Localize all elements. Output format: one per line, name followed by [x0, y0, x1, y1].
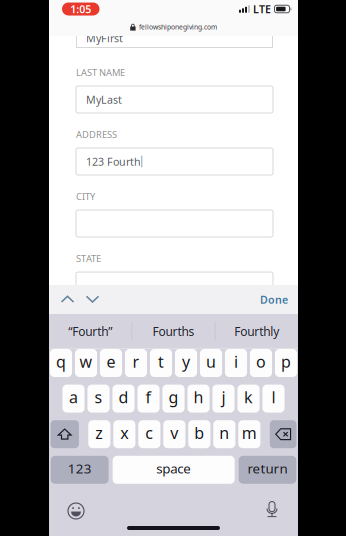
staticText: e — [106, 351, 115, 372]
button[interactable]: Done — [260, 285, 288, 314]
staticText: 1:05 — [70, 2, 91, 16]
staticText: ADDRESS — [76, 128, 117, 141]
button[interactable]: u — [200, 349, 222, 377]
staticText: u — [206, 351, 216, 372]
staticText: v — [170, 422, 178, 443]
button[interactable]: Emoji keyboard — [61, 502, 91, 520]
staticText: n — [219, 422, 229, 443]
button[interactable]: 123 — [51, 456, 109, 484]
button[interactable]: p — [275, 349, 297, 377]
staticText: o — [256, 351, 266, 372]
staticText: l — [271, 386, 275, 408]
button[interactable]: q — [50, 349, 72, 377]
staticText: t — [158, 351, 164, 372]
staticText: s — [94, 386, 102, 408]
button[interactable]: r — [125, 349, 147, 377]
staticText: d — [118, 386, 128, 408]
staticText: LAST NAME — [76, 66, 125, 79]
button[interactable]: z — [88, 420, 110, 448]
button[interactable]: o — [250, 349, 272, 377]
staticText: g — [168, 386, 178, 408]
staticText: y — [182, 351, 190, 372]
button[interactable]: t — [150, 349, 172, 377]
button[interactable]: n — [213, 420, 235, 448]
staticText: i — [234, 351, 238, 372]
button[interactable]: v — [163, 420, 185, 448]
button[interactable]: l — [262, 385, 285, 413]
staticText: “Fourth” — [68, 323, 112, 339]
button[interactable]: e — [100, 349, 122, 377]
staticText: b — [194, 422, 204, 443]
button[interactable]: d — [112, 385, 135, 413]
button[interactable]: h — [187, 385, 210, 413]
button[interactable]: f — [137, 385, 160, 413]
staticText: j — [221, 386, 225, 408]
staticText: MyLast — [86, 92, 122, 107]
staticText: STATE — [76, 252, 101, 265]
staticText: a — [69, 386, 78, 408]
staticText: q — [56, 351, 66, 372]
button[interactable]: “Fourth” — [49, 314, 131, 348]
staticText: c — [145, 422, 153, 443]
button[interactable]: m — [238, 420, 260, 448]
button[interactable]: c — [138, 420, 160, 448]
staticText: return — [247, 459, 287, 477]
button[interactable]: a — [62, 385, 85, 413]
staticText: Done — [260, 292, 288, 307]
staticText: fellowshiponegiving.com — [139, 23, 217, 31]
staticText: p — [281, 351, 291, 372]
button[interactable]: Dictation — [257, 502, 287, 520]
button[interactable]: Next field — [80, 285, 105, 314]
button[interactable]: Shift — [50, 420, 79, 448]
staticText: MyFirst — [86, 31, 123, 45]
staticText: Fourthly — [234, 323, 279, 339]
staticText: f — [145, 386, 151, 408]
staticText: Fourths — [152, 323, 194, 339]
button[interactable]: x — [113, 420, 135, 448]
button[interactable]: fellowshiponegiving.com — [49, 18, 298, 36]
button[interactable]: s — [87, 385, 110, 413]
button[interactable]: k — [237, 385, 260, 413]
staticText: 123 Fourth — [86, 154, 141, 169]
staticText: space — [156, 459, 191, 477]
button[interactable]: return — [239, 456, 296, 484]
button[interactable]: Fourthly — [216, 314, 298, 348]
staticText: LTE — [253, 2, 271, 16]
staticText: k — [244, 386, 253, 408]
staticText: x — [120, 422, 128, 443]
button[interactable]: j — [212, 385, 235, 413]
button[interactable]: Previous field — [55, 285, 80, 314]
staticText: r — [132, 351, 139, 372]
button[interactable]: space — [113, 456, 235, 484]
button[interactable]: g — [162, 385, 185, 413]
button[interactable]: b — [188, 420, 210, 448]
button[interactable]: Fourths — [132, 314, 215, 348]
staticText: m — [242, 422, 257, 443]
button[interactable]: Delete — [270, 420, 296, 448]
button[interactable]: w — [75, 349, 97, 377]
staticText: w — [79, 351, 92, 372]
button[interactable]: y — [175, 349, 197, 377]
staticText: 123 — [68, 459, 92, 477]
button[interactable]: i — [225, 349, 247, 377]
staticText: CITY — [76, 190, 95, 203]
staticText: h — [193, 386, 203, 408]
staticText: z — [95, 422, 103, 443]
